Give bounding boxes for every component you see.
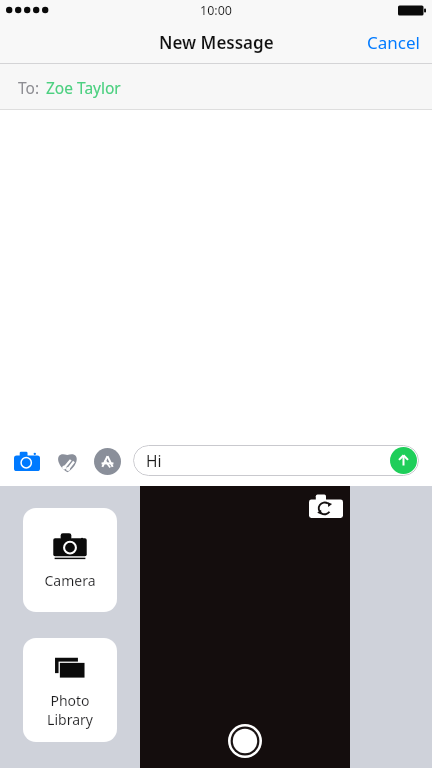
button[interactable]: Photo <box>23 638 117 742</box>
staticText: New Message <box>159 31 274 54</box>
staticText: Zoe Taylor <box>46 77 121 98</box>
button[interactable]: Switch camera <box>309 493 343 518</box>
button[interactable]: Cancel <box>355 21 432 64</box>
staticText: Cancel <box>367 31 420 54</box>
button[interactable]: Send <box>390 447 417 474</box>
staticText: Photo <box>50 691 90 710</box>
button[interactable]: Camera <box>23 508 117 612</box>
button[interactable]: Camera viewfinder <box>140 486 350 768</box>
button[interactable]: Hi <box>133 445 419 476</box>
staticText: Hi <box>146 450 162 471</box>
button[interactable]: Camera <box>10 444 44 478</box>
staticText: Library <box>47 710 93 729</box>
button[interactable]: App Store <box>90 444 124 478</box>
button[interactable]: To: <box>0 64 432 110</box>
staticText: To: <box>18 77 40 98</box>
staticText: Camera <box>44 571 96 590</box>
button[interactable]: Digital Touch <box>50 444 84 478</box>
staticText: 10:00 <box>200 2 232 19</box>
button[interactable]: Take photo <box>228 724 262 758</box>
